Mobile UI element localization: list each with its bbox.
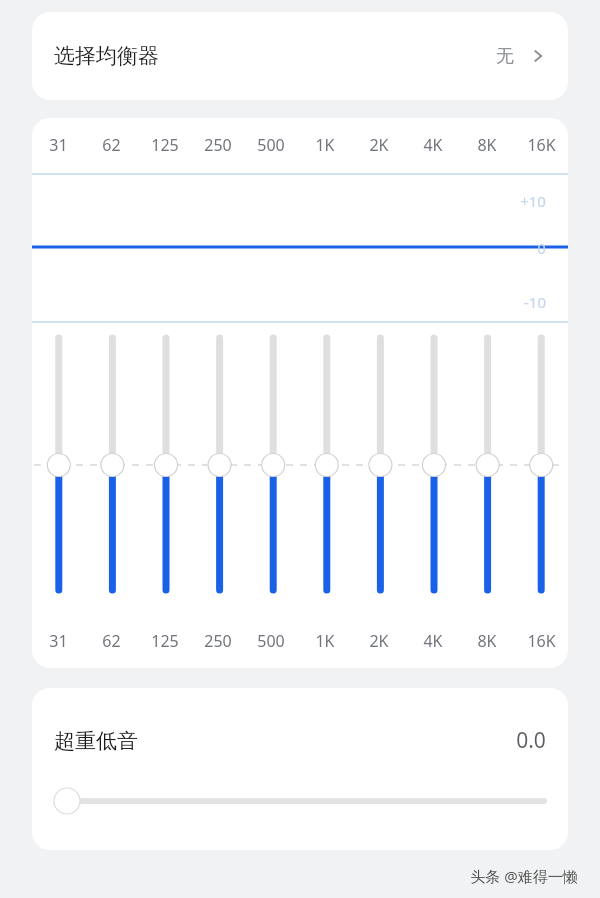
staticText: 500 (257, 134, 285, 156)
staticText: 4K (423, 630, 443, 652)
button[interactable]: 125 Hz band level (138, 324, 191, 613)
staticText: 2K (369, 134, 389, 156)
staticText: 2K (369, 630, 389, 652)
staticText: 31 (49, 630, 68, 652)
staticText: 选择均衡器 (54, 43, 159, 69)
button[interactable]: 选择均衡器 (32, 12, 568, 100)
staticText: 125 (151, 134, 179, 156)
staticText: -10 (524, 292, 546, 312)
button[interactable]: 16K Hz band level (514, 324, 568, 613)
staticText: 125 (151, 630, 179, 652)
staticText: 31 (49, 134, 68, 156)
button[interactable]: 1K Hz band level (298, 324, 352, 613)
staticText: 无 (496, 45, 514, 68)
staticText: 62 (102, 134, 121, 156)
button[interactable]: 500 Hz band level (244, 324, 298, 613)
button[interactable]: 2K Hz band level (352, 324, 406, 613)
staticText: 250 (204, 134, 232, 156)
button[interactable]: 8K Hz band level (460, 324, 514, 613)
button[interactable]: 250 Hz band level (191, 324, 244, 613)
staticText: 0 (537, 238, 546, 258)
staticText: 超重低音 (54, 728, 138, 754)
button[interactable]: 31 Hz band level (32, 324, 85, 613)
button[interactable]: 4K Hz band level (406, 324, 460, 613)
staticText: 1K (315, 630, 335, 652)
staticText: 62 (102, 630, 121, 652)
button[interactable]: Bass boost level (54, 785, 546, 817)
staticText: 16K (527, 134, 556, 156)
staticText: 8K (477, 134, 497, 156)
staticText: 8K (477, 630, 497, 652)
staticText: +10 (520, 191, 546, 211)
button[interactable]: 62 Hz band level (85, 324, 138, 613)
staticText: 16K (527, 630, 556, 652)
staticText: 1K (315, 134, 335, 156)
staticText: 头条 @难得一懒 (470, 866, 578, 886)
staticText: 4K (423, 134, 443, 156)
staticText: 500 (257, 630, 285, 652)
staticText: 250 (204, 630, 232, 652)
staticText: 0.0 (516, 726, 546, 755)
